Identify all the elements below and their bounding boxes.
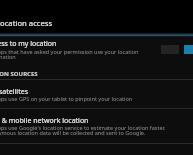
- button[interactable]: Location on/off switch: [161, 45, 193, 55]
- button[interactable]: Wi-Fi & mobile network location: [0, 110, 193, 143]
- staticText: Access to my location: [0, 39, 57, 49]
- staticText: Location access: [0, 18, 53, 28]
- staticText: Let apps that have asked your permission…: [0, 48, 139, 61]
- staticText: Let apps use Google's location service t…: [0, 124, 166, 137]
- button[interactable]: GPS satellites: [0, 81, 193, 108]
- staticText: GPS satellites: [0, 87, 28, 97]
- staticText: LOCATION SOURCES: [0, 70, 38, 78]
- staticText: Wi-Fi & mobile network location: [0, 116, 89, 126]
- staticText: Let apps use GPS on your tablet to pinpo…: [0, 95, 133, 102]
- button[interactable]: Location access: [0, 0, 193, 33]
- button[interactable]: Access to my location: [0, 36, 193, 63]
